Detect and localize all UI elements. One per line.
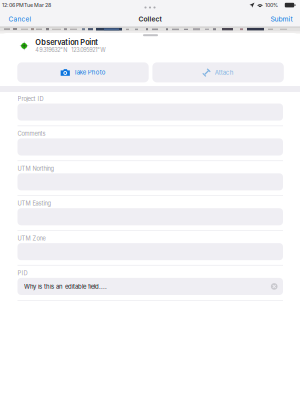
staticText: UTM Zone bbox=[17, 235, 45, 242]
staticText: Take Photo bbox=[74, 69, 106, 76]
staticText: 49.319632°N 123.095921°W bbox=[35, 47, 105, 53]
button[interactable]: Submit bbox=[244, 12, 300, 26]
button[interactable]: Take Photo bbox=[17, 62, 149, 82]
staticText: UTM Northing bbox=[17, 165, 54, 172]
staticText: Submit bbox=[270, 15, 292, 23]
staticText: Attach bbox=[215, 69, 234, 76]
staticText: Observation Point bbox=[35, 38, 98, 47]
staticText: Tue Mar 28 bbox=[24, 2, 51, 8]
staticText: PID bbox=[17, 270, 27, 277]
staticText: Collect bbox=[138, 15, 161, 23]
staticText: 12:06 PM bbox=[2, 2, 24, 8]
staticText: Project ID bbox=[17, 95, 43, 102]
button[interactable]: Attach bbox=[152, 62, 284, 82]
staticText: Why is this an editable field.... bbox=[24, 283, 107, 290]
button[interactable]: Cancel bbox=[0, 12, 56, 26]
staticText: UTM Easting bbox=[17, 200, 51, 207]
staticText: 100% bbox=[265, 2, 278, 8]
staticText: Comments bbox=[17, 130, 45, 137]
staticText: Cancel bbox=[8, 15, 31, 23]
